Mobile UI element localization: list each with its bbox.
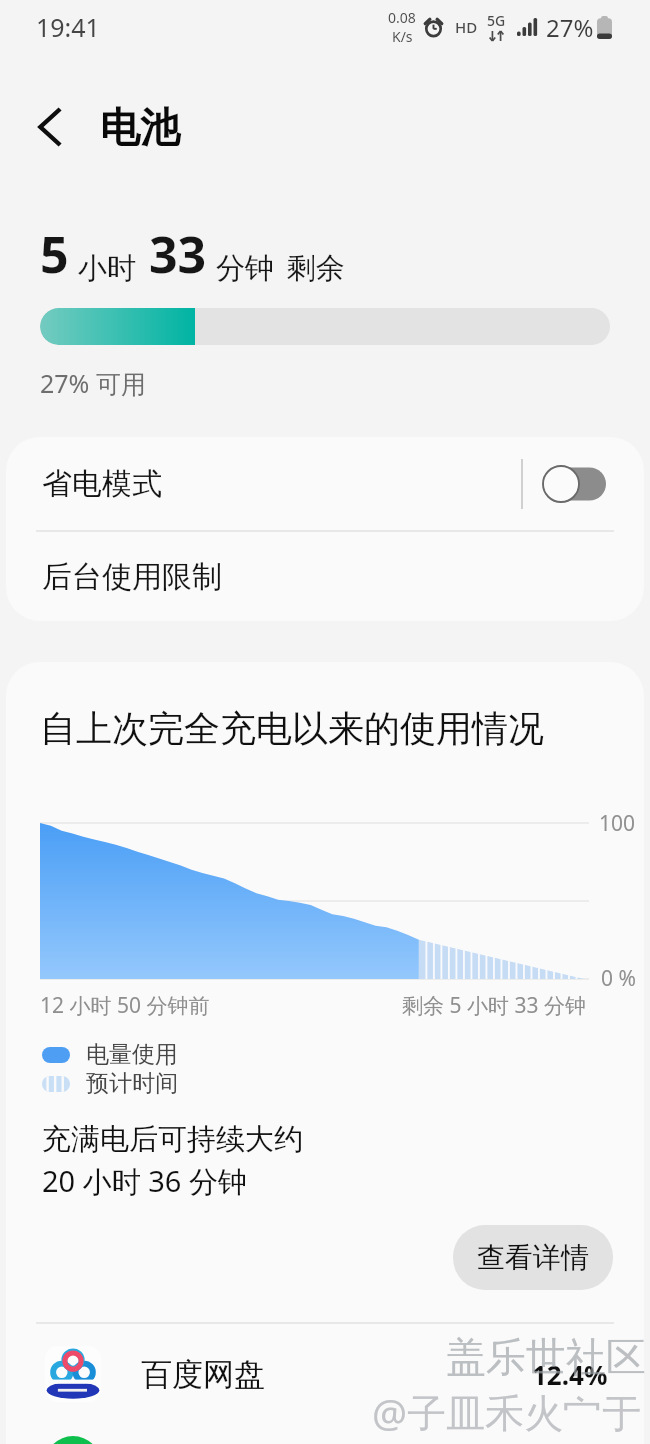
staticText: HD <box>455 17 478 37</box>
staticText: 0 % <box>601 964 636 993</box>
button[interactable]: 查看详情 <box>453 1225 613 1290</box>
staticText: 19:41 <box>36 10 100 44</box>
button[interactable]: 省电模式 <box>6 437 644 530</box>
staticText: 预计时间 <box>86 1069 178 1098</box>
button[interactable] <box>6 1424 644 1444</box>
staticText: 12 小时 50 分钟前 <box>40 991 210 1020</box>
staticText: 盖乐世社区 <box>446 1332 646 1382</box>
staticText: @子皿禾火宀于 <box>372 1385 642 1438</box>
staticText: 0.08 <box>388 8 416 27</box>
staticText: K/s <box>392 27 413 46</box>
staticText: 33 <box>149 220 207 288</box>
staticText: 12.4% <box>532 1357 608 1392</box>
staticText: 电池 <box>100 102 180 152</box>
staticText: 自上次完全充电以来的使用情况 <box>40 706 544 751</box>
staticText: 100 <box>599 809 636 838</box>
staticText: 省电模式 <box>42 465 521 503</box>
staticText: 分钟 <box>216 250 274 287</box>
staticText: 27% <box>546 11 594 44</box>
staticText: 电量使用 <box>86 1040 178 1069</box>
staticText: 后台使用限制 <box>42 558 222 596</box>
staticText: 充满电后可持续大约 <box>42 1121 303 1158</box>
staticText: 20 小时 36 分钟 <box>42 1161 247 1201</box>
staticText: 27% 可用 <box>40 366 146 400</box>
staticText: 查看详情 <box>477 1240 589 1275</box>
button[interactable]: 后台使用限制 <box>6 532 644 621</box>
button[interactable]: Back <box>26 103 74 151</box>
button[interactable]: Power saving mode toggle <box>543 465 607 503</box>
staticText: 剩余 5 小时 33 分钟 <box>402 991 586 1020</box>
staticText: 剩余 <box>287 250 345 287</box>
staticText: 小时 <box>78 250 136 287</box>
staticText: 百度网盘 <box>141 1355 265 1394</box>
staticText: 5 <box>40 220 69 288</box>
staticText: 5G <box>487 11 506 30</box>
button[interactable]: 百度网盘 <box>6 1324 644 1424</box>
